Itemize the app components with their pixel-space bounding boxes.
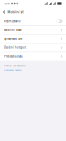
button[interactable]: Režim Letadlo xyxy=(0,17,66,25)
button[interactable]: Osobní hotspot xyxy=(0,43,66,52)
staticText: Režim Letadlo xyxy=(4,19,21,23)
button[interactable]: Mobilní data xyxy=(0,26,66,34)
staticText: Mobilní síť xyxy=(7,10,23,14)
staticText: Nevíte, jak nastavit? xyxy=(4,64,26,67)
button[interactable]: Zpět xyxy=(1,7,7,17)
staticText: Nastavení hovorů xyxy=(4,68,21,71)
staticText: Správa karet SIM xyxy=(4,37,22,41)
button[interactable]: Nastavení hovorů xyxy=(4,68,21,71)
staticText: Osobní hotspot xyxy=(4,46,26,49)
button[interactable]: Přenesená data xyxy=(0,52,66,61)
staticText: 10:09 xyxy=(4,2,9,5)
staticText: Mobilní data xyxy=(4,28,21,32)
staticText: Přenesená data xyxy=(4,55,22,58)
button[interactable]: Správa karet SIM xyxy=(0,35,66,43)
